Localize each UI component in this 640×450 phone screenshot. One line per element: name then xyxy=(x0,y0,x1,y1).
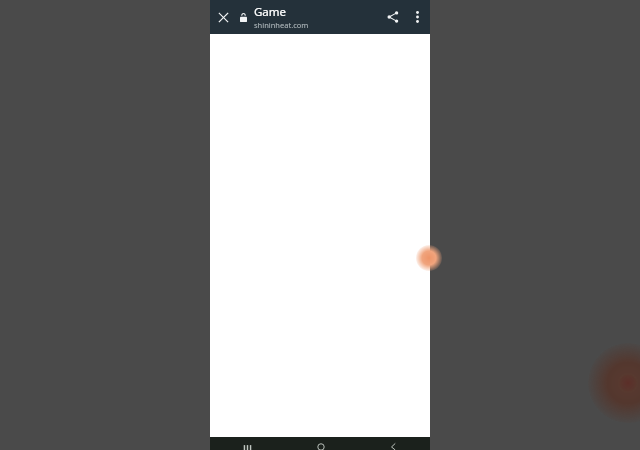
button[interactable]: Home xyxy=(284,437,357,450)
button[interactable]: Share xyxy=(380,0,406,34)
button[interactable]: Recent apps xyxy=(210,437,284,450)
button[interactable]: More options xyxy=(406,0,428,34)
button[interactable]: Back xyxy=(357,437,430,450)
button[interactable]: Close xyxy=(210,0,236,34)
staticText: shininheat.com xyxy=(254,20,309,30)
staticText: Game xyxy=(254,4,287,20)
